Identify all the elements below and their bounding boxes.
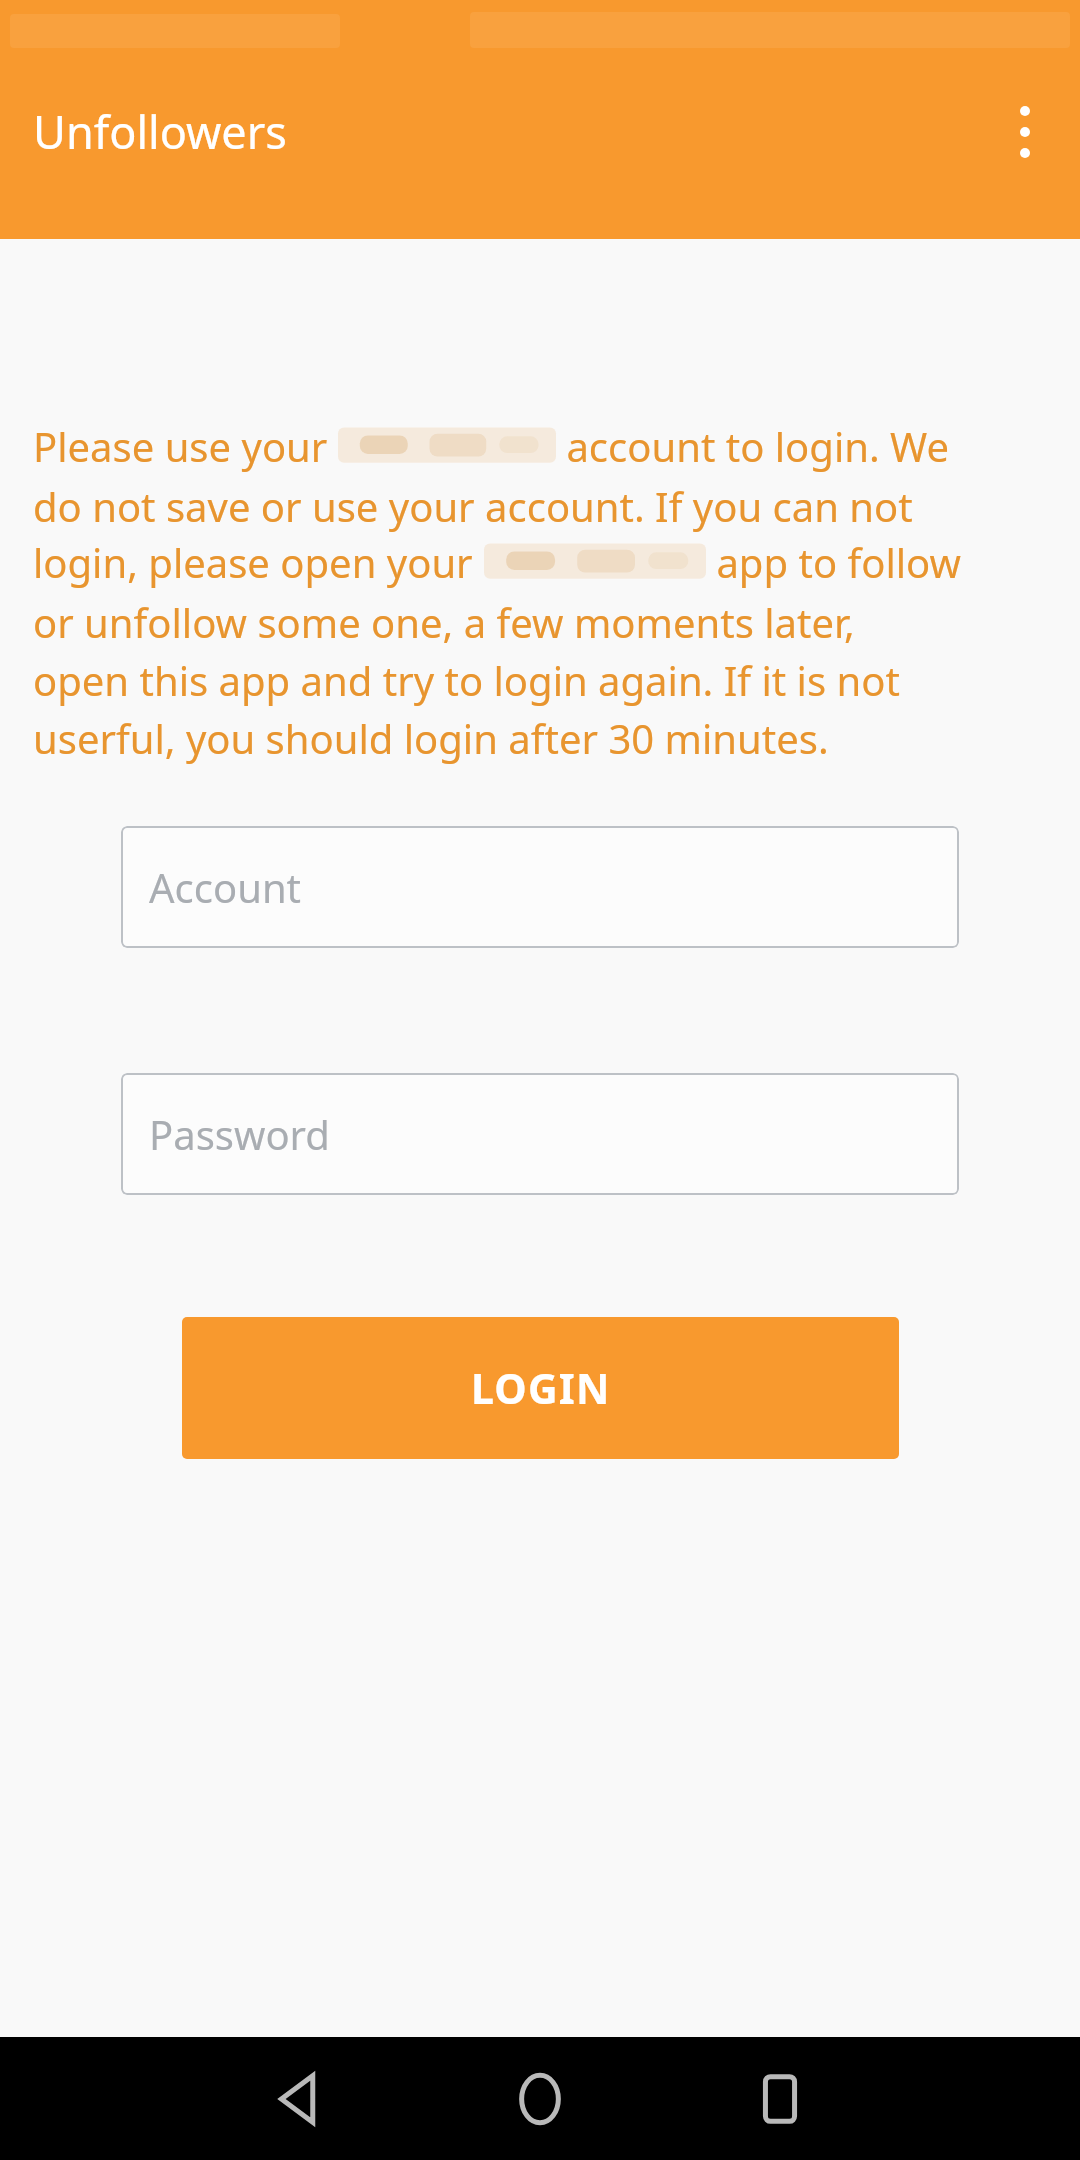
staticText: or unfollow some one, a few moments late… (33, 595, 855, 649)
button[interactable]: LOGIN (182, 1317, 899, 1459)
button[interactable]: Recent apps (660, 2037, 900, 2160)
button[interactable]: Account input field (121, 826, 959, 948)
staticText: Unfollowers (33, 101, 287, 162)
button[interactable]: Password input field (121, 1073, 959, 1195)
button[interactable]: Home (420, 2037, 660, 2160)
staticText: Account (149, 860, 302, 914)
staticText: userful, you should login after 30 minut… (33, 711, 829, 765)
staticText: LOGIN (471, 1360, 611, 1416)
button[interactable]: Back (180, 2037, 420, 2160)
staticText: do not save or use your account. If you … (33, 479, 913, 533)
staticText: Please use your (33, 419, 338, 473)
staticText: login, please open your (33, 535, 484, 589)
staticText: Password (149, 1107, 330, 1161)
staticText: account to login. We (556, 419, 949, 473)
staticText: app to follow (706, 535, 961, 589)
staticText: open this app and try to login again. If… (33, 653, 900, 707)
button[interactable]: More options (970, 77, 1080, 187)
